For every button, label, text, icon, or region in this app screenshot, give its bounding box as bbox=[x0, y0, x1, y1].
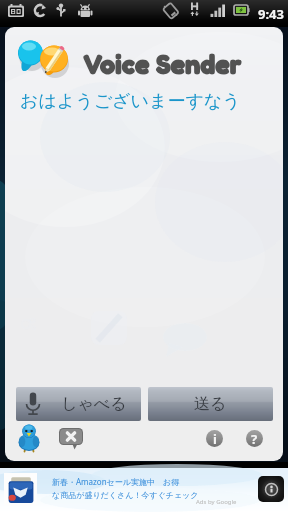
staticText: 9:43 bbox=[258, 5, 284, 23]
button[interactable]: しゃべる bbox=[16, 387, 141, 421]
staticText: Voice Sender bbox=[83, 48, 242, 81]
button[interactable]: Post to Twitter bbox=[17, 422, 41, 454]
staticText: ? bbox=[251, 430, 258, 447]
button[interactable]: Clear text bbox=[58, 427, 84, 451]
button[interactable]: Help bbox=[246, 430, 263, 447]
button[interactable]: Information bbox=[206, 430, 223, 447]
staticText: Ads by Google bbox=[196, 498, 237, 506]
staticText: 送る bbox=[194, 394, 227, 414]
staticText: i bbox=[213, 430, 217, 447]
staticText: おはようございまーすなう bbox=[20, 90, 241, 113]
button[interactable]: Ad choices bbox=[258, 476, 284, 502]
button[interactable]: 送る bbox=[148, 387, 273, 421]
staticText: 新春・Amazonセール実施中 お得 bbox=[52, 476, 180, 487]
staticText: しゃべる bbox=[61, 394, 127, 414]
button[interactable]: Advertisement bbox=[0, 468, 288, 512]
staticText: な商品が盛りだくさん！今すぐチェック bbox=[52, 490, 199, 500]
